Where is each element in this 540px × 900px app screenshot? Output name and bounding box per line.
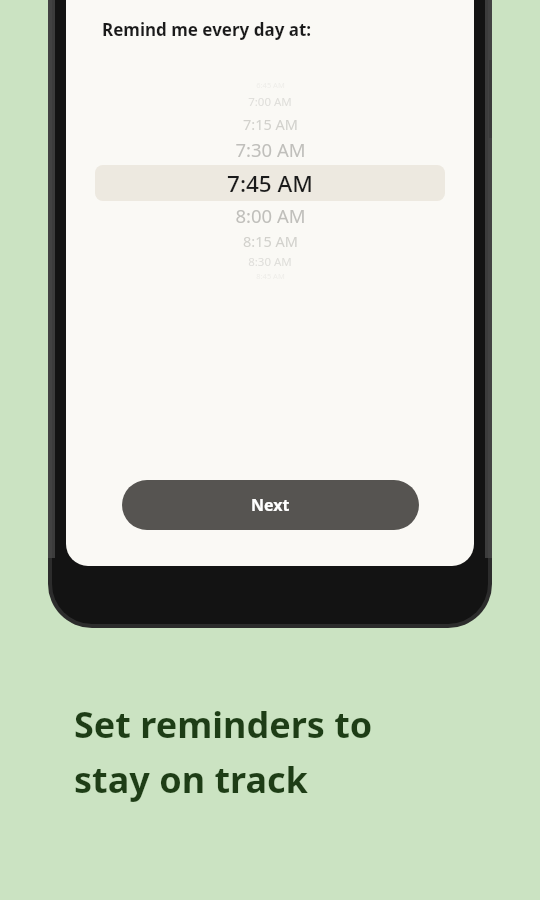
staticText: 7:00 AM (248, 94, 292, 110)
staticText: Remind me every day at: (102, 18, 312, 41)
staticText: Next (251, 494, 290, 516)
button[interactable] (95, 165, 445, 201)
staticText: 6:45 AM (256, 80, 285, 90)
button[interactable]: 7:45 AM (66, 166, 474, 200)
staticText: 7:45 AM (227, 168, 313, 199)
staticText: 8:45 AM (256, 271, 285, 281)
staticText: 8:15 AM (243, 231, 298, 251)
staticText: Set reminders to (74, 700, 373, 749)
staticText: 8:00 AM (235, 203, 306, 228)
button[interactable]: Next (122, 480, 419, 530)
staticText: 7:30 AM (235, 137, 306, 162)
staticText: 7:15 AM (243, 114, 298, 134)
staticText: 8:30 AM (248, 254, 292, 270)
staticText: stay on track (74, 755, 308, 804)
